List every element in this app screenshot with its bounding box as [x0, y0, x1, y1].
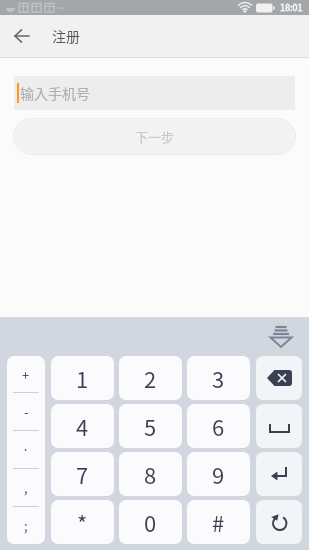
button[interactable]: ·	[7, 431, 45, 468]
button[interactable]: 7	[51, 452, 114, 496]
staticText: 5	[144, 410, 157, 442]
staticText: 下一步	[135, 127, 175, 146]
staticText: -	[24, 402, 29, 421]
button[interactable]: -	[7, 393, 45, 430]
button[interactable]	[256, 356, 302, 400]
button[interactable]: 2	[119, 356, 182, 400]
button[interactable]	[0, 15, 44, 57]
staticText: 1	[76, 362, 89, 394]
staticText: 7	[76, 458, 89, 490]
staticText: ·	[22, 440, 30, 459]
staticText: *	[77, 506, 88, 538]
button[interactable]: 5	[119, 404, 182, 448]
staticText: 注册	[52, 26, 80, 46]
button[interactable]: 9	[187, 452, 250, 496]
staticText: ;	[24, 516, 28, 535]
staticText: 输入手机号	[20, 83, 90, 103]
button[interactable]: 1	[51, 356, 114, 400]
button[interactable]	[256, 404, 302, 448]
button[interactable]: 4	[51, 404, 114, 448]
button[interactable]: 8	[119, 452, 182, 496]
staticText: +	[22, 365, 30, 384]
button[interactable]: 6	[187, 404, 250, 448]
staticText: 3	[212, 362, 225, 394]
staticText: #	[212, 506, 225, 538]
button[interactable]	[265, 321, 297, 351]
staticText: 9	[212, 458, 225, 490]
button[interactable]: 0	[119, 500, 182, 544]
staticText: 2	[144, 362, 157, 394]
button[interactable]: 3	[187, 356, 250, 400]
button[interactable]	[256, 500, 302, 544]
button[interactable]: #	[187, 500, 250, 544]
staticText: ,	[24, 478, 28, 497]
staticText: 0	[144, 506, 157, 538]
staticText: 8	[144, 458, 157, 490]
button[interactable]: *	[51, 500, 114, 544]
staticText: 4	[76, 410, 89, 442]
staticText: 18:01	[280, 1, 303, 14]
button[interactable]	[256, 452, 302, 496]
button[interactable]: 下一步	[13, 118, 296, 155]
staticText: 6	[212, 410, 225, 442]
button[interactable]: ,	[7, 469, 45, 506]
button[interactable]: 输入手机号	[14, 76, 295, 110]
button[interactable]: ;	[7, 507, 45, 544]
button[interactable]: +	[7, 356, 45, 392]
